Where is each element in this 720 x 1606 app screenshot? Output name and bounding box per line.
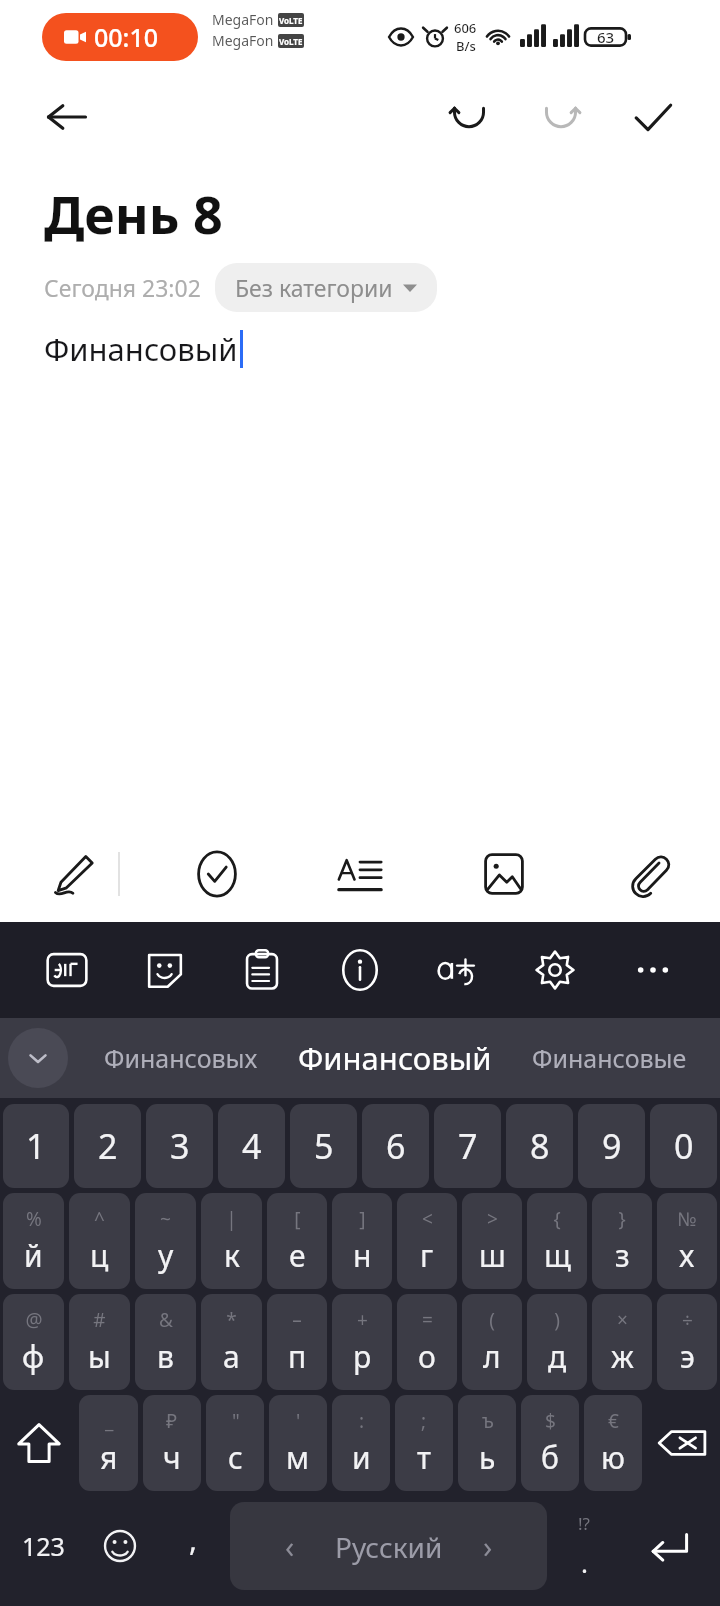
button[interactable]: More bbox=[616, 933, 690, 1007]
button[interactable]: Checklist bbox=[171, 828, 263, 920]
button[interactable]: > bbox=[462, 1193, 522, 1289]
staticText: $ bbox=[545, 1408, 556, 1434]
button[interactable]: Done bbox=[616, 80, 690, 154]
button[interactable]: × bbox=[592, 1294, 652, 1390]
button[interactable]: Финансовых bbox=[80, 1018, 282, 1098]
staticText: ~ bbox=[160, 1206, 171, 1232]
staticText: п bbox=[288, 1336, 307, 1377]
button[interactable]: ‹ bbox=[230, 1502, 547, 1590]
button[interactable]: + bbox=[332, 1294, 392, 1390]
button[interactable]: 8 bbox=[506, 1104, 573, 1188]
staticText: ) bbox=[554, 1307, 560, 1333]
button[interactable]: 3 bbox=[146, 1104, 213, 1188]
button[interactable]: Settings bbox=[518, 933, 592, 1007]
button[interactable]: [ bbox=[267, 1193, 327, 1289]
button[interactable]: 5 bbox=[290, 1104, 357, 1188]
staticText: & bbox=[159, 1307, 173, 1333]
button[interactable]: Handwriting bbox=[26, 828, 118, 920]
button[interactable]: } bbox=[592, 1193, 652, 1289]
staticText: 9 bbox=[602, 1123, 622, 1169]
staticText: я bbox=[100, 1437, 118, 1478]
staticText: л bbox=[483, 1336, 501, 1377]
button[interactable]: ÷ bbox=[657, 1294, 717, 1390]
staticText: % bbox=[26, 1206, 42, 1232]
button[interactable]: Stickers bbox=[128, 933, 202, 1007]
staticText: и bbox=[352, 1437, 371, 1478]
button[interactable]: % bbox=[3, 1193, 64, 1289]
button[interactable]: " bbox=[206, 1395, 264, 1491]
staticText: 606 bbox=[454, 19, 477, 37]
button[interactable]: # bbox=[69, 1294, 130, 1390]
button[interactable]: Collapse suggestions bbox=[8, 1028, 68, 1088]
button[interactable]: ; bbox=[395, 1395, 453, 1491]
button[interactable]: _ bbox=[79, 1395, 138, 1491]
staticText: ъ bbox=[482, 1408, 494, 1434]
button[interactable]: 123 bbox=[3, 1496, 83, 1596]
staticText: – bbox=[292, 1307, 302, 1333]
button[interactable]: Enter bbox=[621, 1496, 717, 1596]
staticText: VoLTE bbox=[279, 15, 303, 26]
button[interactable]: 2 bbox=[74, 1104, 141, 1188]
button[interactable]: Back bbox=[30, 80, 104, 154]
staticText: о bbox=[418, 1336, 436, 1377]
button[interactable]: 1 bbox=[3, 1104, 69, 1188]
button[interactable]: Redo bbox=[524, 80, 598, 154]
button[interactable]: 9 bbox=[578, 1104, 645, 1188]
button[interactable]: Emoji bbox=[83, 1496, 156, 1596]
button[interactable]: Shift bbox=[3, 1395, 74, 1491]
button[interactable]: @ bbox=[3, 1294, 64, 1390]
button[interactable]: ] bbox=[332, 1193, 392, 1289]
button[interactable]: ' bbox=[269, 1395, 327, 1491]
button[interactable]: Attach file bbox=[602, 828, 694, 920]
button[interactable]: $ bbox=[521, 1395, 579, 1491]
button[interactable]: Text format bbox=[314, 828, 406, 920]
staticText: ' bbox=[296, 1408, 301, 1434]
button[interactable]: Без категории bbox=[215, 263, 437, 312]
button[interactable]: Info bbox=[323, 933, 397, 1007]
button[interactable]: ( bbox=[462, 1294, 522, 1390]
button[interactable]: = bbox=[397, 1294, 457, 1390]
staticText: { bbox=[553, 1206, 561, 1232]
staticText: MegaFon bbox=[212, 10, 274, 29]
staticText: VoLTE bbox=[279, 36, 303, 47]
staticText: в bbox=[157, 1336, 174, 1377]
staticText: ( bbox=[489, 1307, 495, 1333]
button[interactable]: 4 bbox=[218, 1104, 285, 1188]
staticText: ч bbox=[163, 1437, 181, 1478]
staticText: = bbox=[422, 1307, 433, 1333]
button[interactable]: | bbox=[201, 1193, 262, 1289]
button[interactable]: ъ bbox=[458, 1395, 516, 1491]
button[interactable]: Финансовые bbox=[508, 1018, 710, 1098]
button[interactable]: € bbox=[584, 1395, 642, 1491]
button[interactable]: , bbox=[156, 1496, 230, 1596]
button[interactable]: Финансовый bbox=[282, 1018, 508, 1098]
button[interactable]: < bbox=[397, 1193, 457, 1289]
button[interactable]: { bbox=[527, 1193, 587, 1289]
staticText: ^ bbox=[94, 1206, 105, 1232]
staticText: MegaFon bbox=[212, 31, 274, 50]
button[interactable]: № bbox=[657, 1193, 717, 1289]
button[interactable]: & bbox=[135, 1294, 196, 1390]
staticText: ] bbox=[359, 1206, 366, 1232]
button[interactable]: 0 bbox=[650, 1104, 717, 1188]
button[interactable]: Undo bbox=[432, 80, 506, 154]
staticText: # bbox=[93, 1307, 106, 1333]
button[interactable]: ~ bbox=[135, 1193, 196, 1289]
staticText: } bbox=[618, 1206, 626, 1232]
button[interactable]: ) bbox=[527, 1294, 587, 1390]
staticText: у bbox=[158, 1235, 174, 1276]
button[interactable]: ₽ bbox=[143, 1395, 201, 1491]
button[interactable]: !? bbox=[547, 1496, 621, 1596]
button[interactable]: : bbox=[332, 1395, 390, 1491]
button[interactable]: – bbox=[267, 1294, 327, 1390]
button[interactable]: 7 bbox=[434, 1104, 501, 1188]
button[interactable]: Backspace bbox=[647, 1395, 717, 1491]
button[interactable]: * bbox=[201, 1294, 262, 1390]
button[interactable]: Clipboard bbox=[225, 933, 299, 1007]
button[interactable]: GIF bbox=[30, 933, 104, 1007]
button[interactable]: Language bbox=[421, 933, 495, 1007]
button[interactable]: ^ bbox=[69, 1193, 130, 1289]
button[interactable]: 6 bbox=[362, 1104, 429, 1188]
button[interactable]: Insert image bbox=[458, 828, 550, 920]
staticText: № bbox=[677, 1206, 697, 1232]
